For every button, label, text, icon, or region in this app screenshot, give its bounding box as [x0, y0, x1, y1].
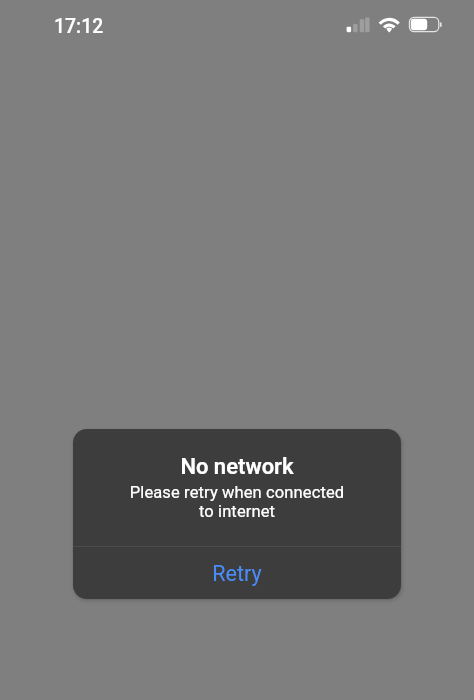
staticText: Please retry when connected to internet: [125, 483, 349, 521]
staticText: Retry: [212, 561, 262, 586]
button[interactable]: Retry: [73, 546, 401, 599]
staticText: No network: [73, 454, 401, 480]
staticText: 17:12: [54, 15, 104, 38]
other: Wi-Fi: [376, 15, 404, 35]
other: Signal strength: [346, 17, 371, 33]
other: Battery: [408, 16, 443, 34]
